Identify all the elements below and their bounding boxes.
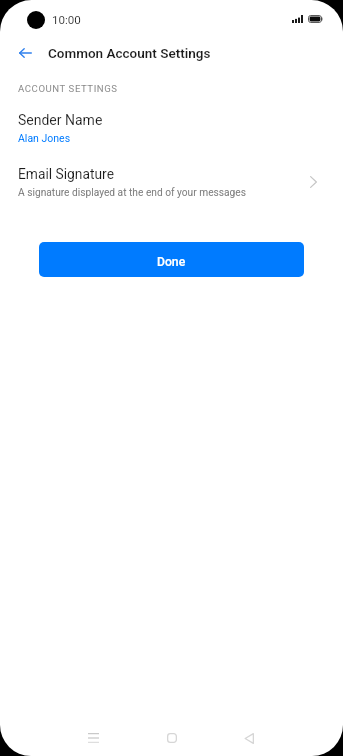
button[interactable]: Recent apps <box>69 714 117 756</box>
staticText: ACCOUNT SETTINGS <box>18 83 118 94</box>
staticText: Sender Name <box>18 112 103 128</box>
button[interactable]: Back <box>7 35 43 71</box>
button[interactable]: Email Signature <box>0 159 343 203</box>
button[interactable]: Home <box>148 714 196 756</box>
staticText: Email Signature <box>18 166 114 182</box>
button[interactable]: Sender Name <box>0 105 343 149</box>
button[interactable]: Back <box>225 714 273 756</box>
staticText: Done <box>157 255 186 269</box>
staticText: Common Account Settings <box>48 45 211 61</box>
staticText: 10:00 <box>52 13 81 27</box>
staticText: A signature displayed at the end of your… <box>18 187 246 199</box>
button[interactable]: Done <box>39 242 304 277</box>
staticText: Alan Jones <box>18 132 71 144</box>
